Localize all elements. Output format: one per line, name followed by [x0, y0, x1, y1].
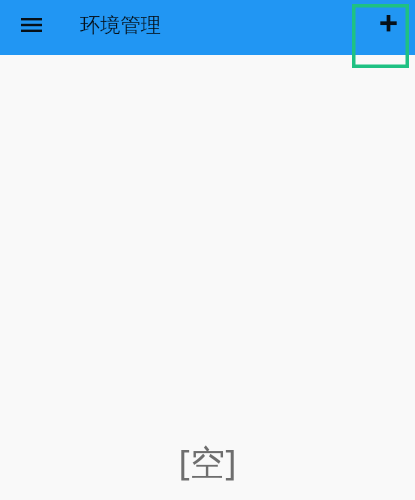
- button[interactable]: Menu: [8, 2, 54, 48]
- staticText: [空]: [178, 438, 237, 486]
- staticText: 环境管理: [80, 13, 161, 38]
- button[interactable]: Add: [352, 4, 409, 68]
